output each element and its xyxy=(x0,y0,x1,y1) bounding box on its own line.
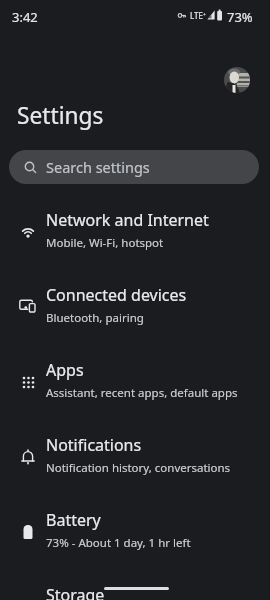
staticText: LTE⁺ xyxy=(190,10,206,21)
button[interactable]: Network and Internet xyxy=(0,197,270,272)
button[interactable]: Search settings xyxy=(9,150,259,184)
button[interactable]: Apps xyxy=(0,347,270,422)
staticText: Storage xyxy=(46,584,105,600)
staticText: Notification history, conversations xyxy=(46,460,231,476)
button[interactable]: Battery xyxy=(0,497,270,572)
staticText: 3:42 xyxy=(12,8,38,26)
staticText: Search settings xyxy=(46,157,150,177)
staticText: Mobile, Wi-Fi, hotspot xyxy=(46,235,164,251)
staticText: Battery xyxy=(46,509,101,531)
staticText: Connected devices xyxy=(46,284,187,306)
button[interactable]: Notifications xyxy=(0,422,270,497)
staticText: 73% xyxy=(227,8,253,26)
button[interactable]: Connected devices xyxy=(0,272,270,347)
staticText: Bluetooth, pairing xyxy=(46,310,144,326)
staticText: Assistant, recent apps, default apps xyxy=(46,385,238,401)
button[interactable] xyxy=(224,67,250,93)
staticText: Apps xyxy=(46,359,84,381)
staticText: 73% - About 1 day, 1 hr left xyxy=(46,535,191,551)
staticText: Network and Internet xyxy=(46,209,209,231)
staticText: Settings xyxy=(17,100,104,131)
button[interactable]: Storage xyxy=(0,572,270,600)
staticText: Notifications xyxy=(46,434,142,456)
